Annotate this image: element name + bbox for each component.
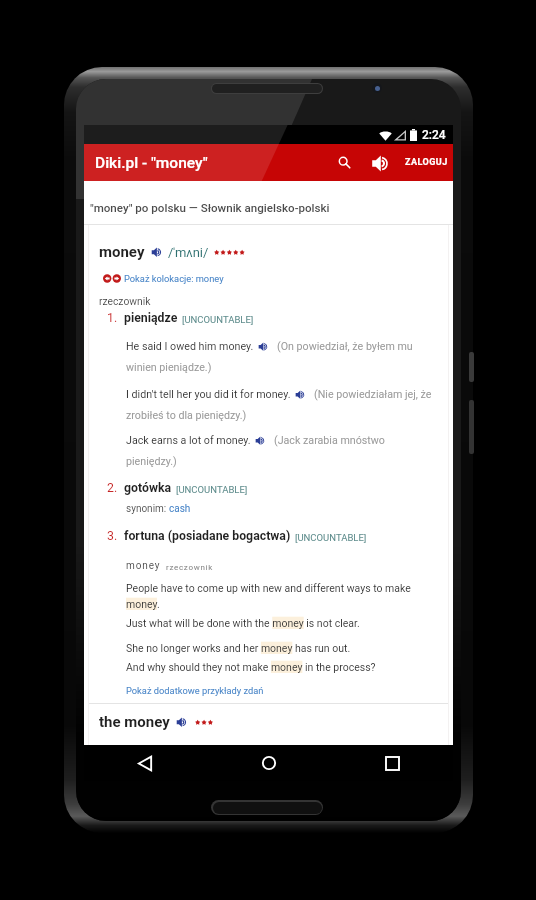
- staticText: Jack earns a lot of money.: [126, 434, 251, 447]
- staticText: [UNCOUNTABLE]: [176, 484, 248, 495]
- button[interactable]: 2.: [107, 474, 248, 502]
- button[interactable]: ZALOGUJ: [401, 144, 451, 181]
- staticText: synonim:: [126, 503, 169, 515]
- button[interactable]: I didn't tell her you did it for money.: [126, 380, 432, 422]
- staticText: (On powiedział, że byłem mu: [277, 340, 413, 353]
- staticText: winien pieniądze.): [126, 361, 212, 374]
- button[interactable]: He said I owed him money.: [126, 332, 413, 374]
- staticText: (Nie powiedziałam jej, że: [314, 388, 432, 401]
- staticText: money: [99, 243, 145, 261]
- staticText: [UNCOUNTABLE]: [295, 532, 367, 543]
- staticText: zrobiłeś to dla pieniędzy.): [126, 409, 247, 422]
- staticText: [UNCOUNTABLE]: [182, 314, 254, 325]
- staticText: 1.: [107, 311, 118, 325]
- button[interactable]: Pokaż kolokacje: money: [103, 264, 224, 292]
- staticText: And why should they not make money in th…: [126, 661, 376, 673]
- button[interactable]: the money: [99, 708, 216, 736]
- button[interactable]: Jack earns a lot of money.: [126, 426, 385, 468]
- button[interactable]: Back: [123, 745, 167, 781]
- button[interactable]: Home: [247, 745, 291, 781]
- staticText: "money" po polsku — Słownik angielsko-po…: [90, 201, 330, 215]
- button[interactable]: money: [99, 238, 247, 266]
- staticText: pieniędzy.): [126, 455, 177, 468]
- button[interactable]: rzeczownik: [99, 287, 151, 315]
- button[interactable]: 3.: [107, 522, 367, 550]
- staticText: 3.: [107, 529, 118, 543]
- button[interactable]: Pronounce: [361, 144, 401, 181]
- staticText: fortuna (posiadane bogactwa): [124, 529, 291, 543]
- staticText: the money: [99, 713, 170, 731]
- staticText: rzeczownik: [166, 563, 213, 572]
- staticText: rzeczownik: [99, 295, 151, 307]
- staticText: cash: [169, 503, 191, 515]
- staticText: gotówka: [124, 481, 172, 495]
- staticText: money.: [126, 598, 160, 610]
- staticText: money: [126, 560, 161, 572]
- staticText: /ˈmʌni/: [168, 245, 209, 260]
- staticText: I didn't tell her you did it for money.: [126, 388, 291, 401]
- button[interactable]: Pokaż dodatkowe przykłady zdań: [126, 676, 264, 704]
- staticText: Just what will be done with the money is…: [126, 617, 360, 629]
- staticText: She no longer works and her money has ru…: [126, 642, 351, 654]
- staticText: 2:24: [422, 128, 446, 142]
- staticText: Diki.pl - "money": [95, 154, 208, 172]
- staticText: pieniądze: [124, 311, 178, 325]
- staticText: 2.: [107, 481, 118, 495]
- button[interactable]: Recent apps: [370, 745, 414, 781]
- staticText: ZALOGUJ: [405, 157, 448, 168]
- button[interactable]: synonim:: [126, 495, 191, 523]
- staticText: People have to come up with new and diff…: [126, 582, 411, 594]
- staticText: Pokaż kolokacje: money: [124, 273, 224, 284]
- staticText: (Jack zarabia mnóstwo: [274, 434, 385, 447]
- staticText: He said I owed him money.: [126, 340, 254, 353]
- button[interactable]: 1.: [107, 304, 254, 332]
- button[interactable]: Search: [326, 144, 362, 181]
- staticText: Pokaż dodatkowe przykłady zdań: [126, 685, 264, 696]
